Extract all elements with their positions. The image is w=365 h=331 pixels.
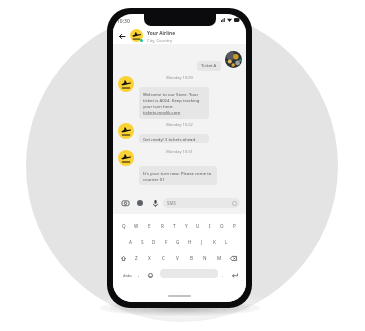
staticText: City, Country (147, 38, 173, 44)
staticText: C (162, 255, 165, 261)
staticText: S (141, 239, 144, 245)
staticText: 10:30 (117, 18, 130, 25)
button[interactable]: Shift (117, 250, 130, 266)
button[interactable]: Q (117, 218, 130, 234)
staticText: V (176, 255, 179, 261)
button[interactable]: R (156, 218, 168, 234)
button[interactable]: P (228, 218, 240, 234)
staticText: K (213, 239, 216, 245)
staticText: Ticket A (201, 63, 217, 69)
staticText: . (222, 272, 224, 278)
staticText: T (173, 223, 176, 229)
staticText: #abc (123, 273, 133, 278)
staticText: , (138, 272, 140, 278)
button[interactable]: Ticket A (197, 61, 221, 71)
staticText: W (134, 223, 139, 229)
button[interactable]: Get ready! 3 tickets ahead. (139, 134, 209, 143)
button[interactable]: W (130, 218, 143, 234)
button[interactable]: O (216, 218, 228, 234)
button[interactable]: . (219, 266, 227, 284)
button[interactable]: A (125, 234, 136, 250)
staticText: O (220, 223, 224, 229)
button[interactable]: Profile (225, 51, 242, 68)
staticText: Monday 10:22 (166, 122, 193, 127)
button[interactable]: Microphone (150, 198, 160, 208)
staticText: Your Airline (147, 30, 176, 37)
button[interactable]: I (204, 218, 216, 234)
button[interactable]: #abc (121, 266, 134, 284)
staticText: L (225, 239, 228, 245)
button[interactable]: Enter (229, 266, 240, 284)
button[interactable]: X (143, 250, 156, 266)
staticText: Monday 10:31 (166, 149, 193, 154)
staticText: G (176, 239, 180, 245)
staticText: H (188, 239, 192, 245)
button[interactable]: L (220, 234, 232, 250)
staticText: N (203, 255, 207, 261)
button[interactable]: U (192, 218, 204, 234)
staticText: B (190, 255, 193, 261)
staticText: Monday 10:09 (166, 75, 193, 80)
staticText: Y (185, 223, 188, 229)
staticText: Z (135, 255, 138, 261)
button[interactable]: V (170, 250, 184, 266)
button[interactable]: M (212, 250, 226, 266)
staticText: Q (122, 223, 126, 229)
button[interactable]: Camera (120, 198, 130, 208)
staticText: U (196, 223, 200, 229)
staticText: tickets.movlik.com (143, 109, 181, 115)
button[interactable]: , (135, 266, 143, 284)
staticText: A (129, 239, 132, 245)
staticText: It's your turn now. Please come to count… (143, 170, 214, 182)
staticText: J (201, 239, 203, 245)
button[interactable]: Y (180, 218, 192, 234)
button[interactable]: T (168, 218, 180, 234)
button[interactable]: H (184, 234, 196, 250)
button[interactable]: F (160, 234, 172, 250)
staticText: SMS (167, 200, 176, 206)
button[interactable]: C (156, 250, 170, 266)
button[interactable]: D (148, 234, 160, 250)
button[interactable]: Back (116, 30, 128, 42)
button[interactable]: K (208, 234, 220, 250)
staticText: F (165, 239, 168, 245)
staticText: Get ready! 3 tickets ahead. (143, 136, 197, 142)
staticText: P (233, 223, 236, 229)
button[interactable]: S (136, 234, 148, 250)
button[interactable]: Backspace (226, 250, 240, 266)
staticText: M (217, 255, 222, 261)
staticText: D (152, 239, 156, 245)
button[interactable]: E (143, 218, 156, 234)
button[interactable]: Emoji (146, 266, 155, 284)
button[interactable]: J (196, 234, 208, 250)
button[interactable]: SMS (163, 198, 240, 208)
staticText: Welcome to our Store. Your ticket is A02… (143, 91, 206, 109)
staticText: R (161, 223, 164, 229)
button[interactable]: It's your turn now. Please come to count… (139, 166, 217, 185)
button[interactable]: Z (130, 250, 143, 266)
staticText: E (148, 223, 151, 229)
staticText: X (148, 255, 151, 261)
staticText: I (209, 223, 211, 229)
button[interactable]: Welcome to our Store. Your ticket is A02… (139, 87, 209, 119)
button[interactable]: G (172, 234, 184, 250)
button[interactable]: B (184, 250, 198, 266)
button[interactable]: N (198, 250, 212, 266)
button[interactable]: Gallery (135, 198, 145, 208)
